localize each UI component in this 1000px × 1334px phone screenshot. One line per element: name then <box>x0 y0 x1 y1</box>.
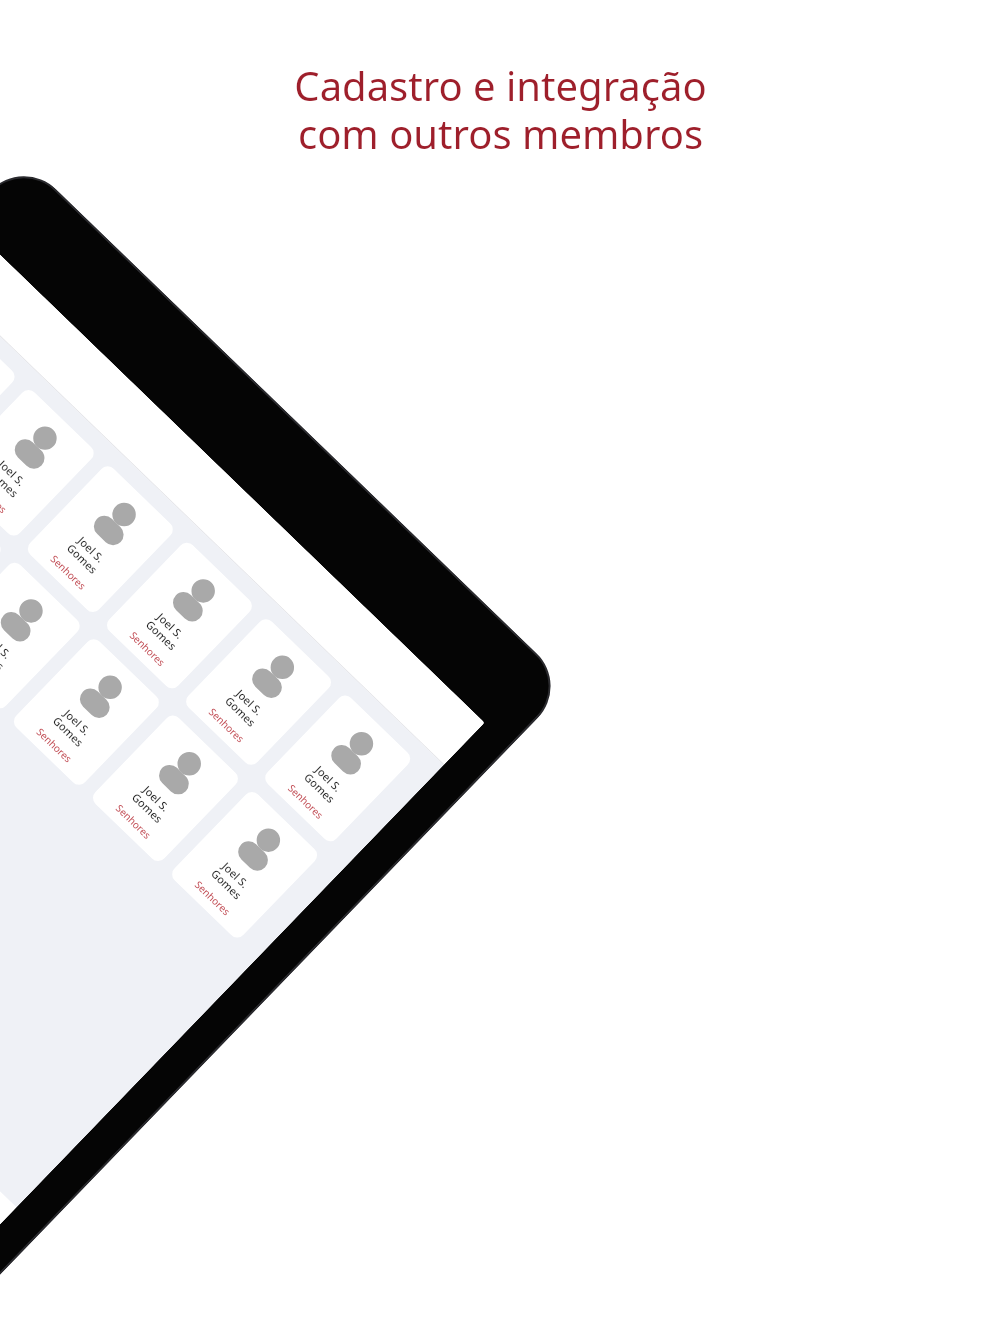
staticText: Joel S. Gomes <box>64 531 110 577</box>
button[interactable]: Joel S. Gomes <box>0 483 4 636</box>
button[interactable]: Joel S. Gomes <box>0 310 18 463</box>
staticText: Senhores <box>113 801 154 841</box>
button[interactable]: Joel S. Gomes <box>182 615 335 768</box>
button[interactable]: Joel S. Gomes <box>10 635 163 788</box>
staticText: Joel S. Gomes <box>129 780 175 826</box>
staticText: Joel S. Gomes <box>0 454 31 500</box>
staticText: Senhores <box>127 628 168 668</box>
button[interactable]: Joel S. Gomes <box>168 788 321 941</box>
staticText: Senhores <box>0 475 10 515</box>
staticText: Joel S. Gomes <box>50 704 96 749</box>
button[interactable]: Joel S. Gomes <box>89 712 242 865</box>
button[interactable]: Joel S. Gomes <box>0 386 97 539</box>
staticText: Senhores <box>34 725 75 765</box>
staticText: Joel S. Gomes <box>301 760 347 806</box>
button[interactable]: Joel S. Gomes <box>103 539 256 692</box>
button[interactable]: Joel S. Gomes <box>0 559 83 712</box>
staticText: Senhores <box>286 781 326 821</box>
staticText: Cadastro e integração com outros membros <box>294 58 707 160</box>
staticText: Joel S. Gomes <box>208 857 254 902</box>
button[interactable]: Joel S. Gomes <box>24 463 176 616</box>
staticText: Senhores <box>48 552 89 592</box>
button[interactable]: Lista <box>0 1087 17 1261</box>
staticText: Senhores <box>207 705 247 745</box>
staticText: Joel S. Gomes <box>143 607 189 653</box>
staticText: Joel S. Gomes <box>0 627 17 673</box>
button[interactable]: Joel S. Gomes <box>261 692 414 845</box>
staticText: Joel S. Gomes <box>222 684 268 730</box>
staticText: Senhores <box>193 877 233 917</box>
